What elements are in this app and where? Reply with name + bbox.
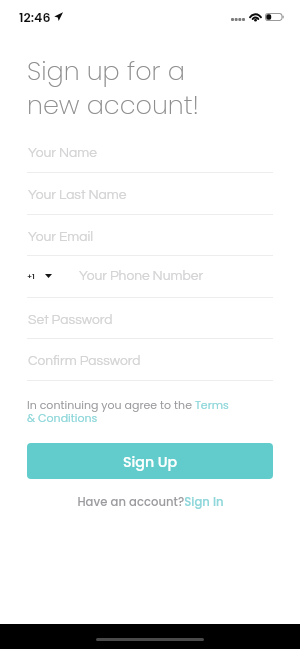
- staticText: +1: [27, 271, 35, 282]
- staticText: Sign up for a new account!: [27, 53, 199, 123]
- button[interactable]: In continuing you agree to the Terms & C…: [27, 397, 229, 426]
- button[interactable]: Sign Up: [27, 443, 273, 479]
- other: Battery: [265, 13, 284, 21]
- button[interactable]: Your Email: [0, 214, 300, 256]
- staticText: Your Name: [28, 146, 97, 160]
- button[interactable]: Confirm Password: [0, 338, 300, 380]
- other: Wi-Fi: [249, 12, 262, 21]
- button[interactable]: Have an account?Sign In: [77, 494, 224, 510]
- staticText: Confirm Password: [28, 354, 141, 368]
- staticText: Your Phone Number: [79, 269, 204, 283]
- other: Country code: [45, 274, 52, 278]
- button[interactable]: +1: [27, 255, 300, 297]
- staticText: 12:46: [19, 9, 51, 27]
- staticText: Set Password: [28, 313, 113, 327]
- button[interactable]: Your Last Name: [0, 172, 300, 214]
- staticText: Your Last Name: [28, 188, 127, 202]
- staticText: Sign Up: [123, 452, 178, 472]
- button[interactable]: Set Password: [0, 297, 300, 339]
- button[interactable]: Your Name: [0, 130, 300, 172]
- staticText: Your Email: [28, 230, 94, 244]
- other: Location: [54, 11, 63, 21]
